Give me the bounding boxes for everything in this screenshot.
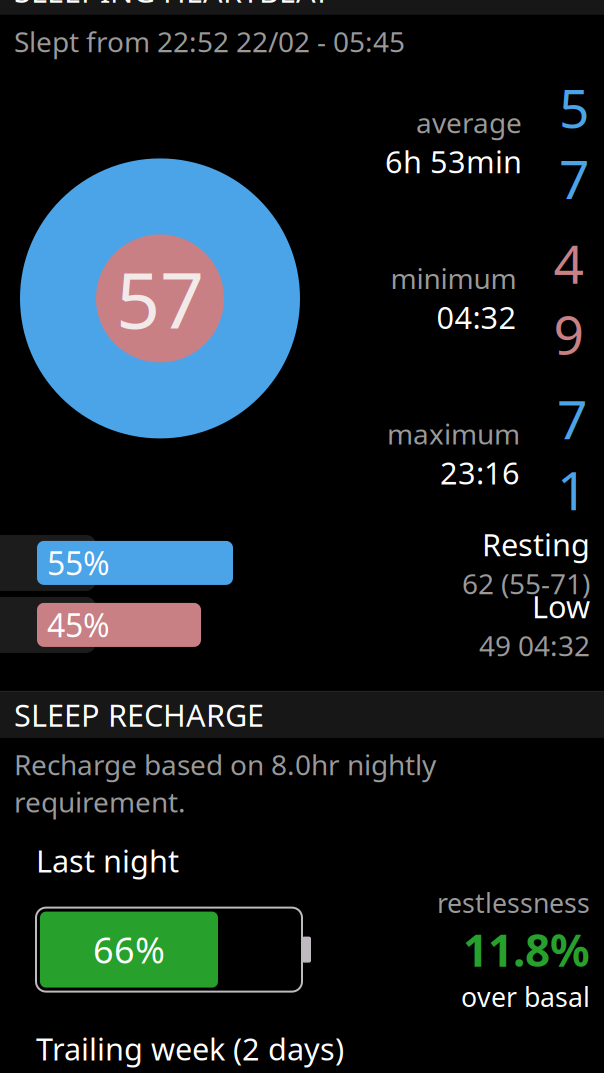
staticText: Resting <box>482 524 590 565</box>
staticText: 57 <box>559 72 590 214</box>
staticText: 45% <box>47 604 110 646</box>
staticText: Low <box>532 586 590 627</box>
staticText: 49 04:32 <box>479 627 590 664</box>
staticText: Last night <box>36 840 179 881</box>
staticText: 66% <box>93 926 165 973</box>
staticText: 71 <box>557 383 588 525</box>
staticText: restlessness <box>437 885 590 920</box>
staticText: over basal <box>461 979 590 1014</box>
staticText: 57 <box>116 247 204 350</box>
staticText: maximum <box>387 415 520 452</box>
staticText: Trailing week (2 days) <box>36 1028 344 1069</box>
staticText: 23:16 <box>440 452 520 493</box>
staticText: 55% <box>47 542 110 584</box>
staticText: SLEEP RECHARGE <box>14 694 264 735</box>
staticText: Slept from 22:52 22/02 - 05:45 <box>14 23 405 60</box>
staticText: 04:32 <box>436 297 516 337</box>
staticText: minimum <box>390 259 516 297</box>
staticText: 49 <box>553 228 584 369</box>
staticText: SLEEPING HEARTBEAT <box>14 0 330 11</box>
staticText: Recharge based on 8.0hr nightly requirem… <box>14 746 436 820</box>
staticText: 62 (55-71) <box>462 565 590 602</box>
staticText: 11.8% <box>463 920 590 979</box>
staticText: average <box>416 104 522 141</box>
staticText: 6h 53min <box>385 141 522 182</box>
